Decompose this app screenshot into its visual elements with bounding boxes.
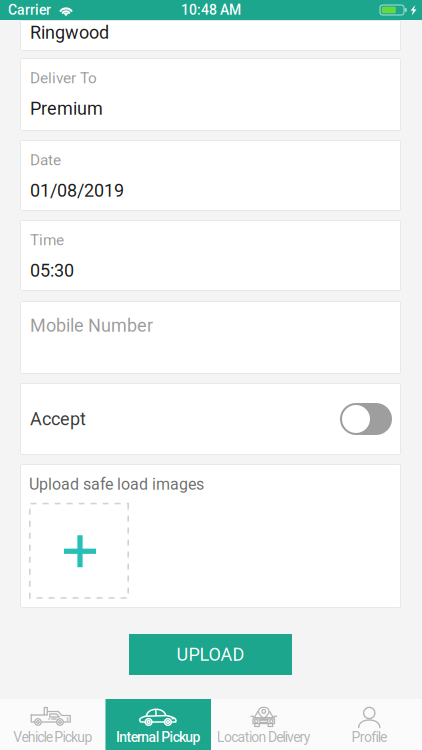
staticText: Mobile Number	[30, 315, 153, 336]
staticText: Location Delivery	[217, 729, 311, 745]
staticText: Vehicle Pickup	[13, 729, 92, 745]
staticText: Premium	[30, 98, 103, 119]
staticText: Date	[30, 151, 61, 169]
button[interactable]: Location Delivery	[211, 699, 316, 750]
button[interactable]: Profile	[316, 699, 422, 750]
staticText: Accept	[30, 408, 86, 430]
staticText: UPLOAD	[176, 644, 244, 665]
staticText: Ringwood	[30, 22, 109, 43]
staticText: 01/08/2019	[30, 180, 124, 201]
staticText: 10:48 AM	[181, 2, 241, 18]
button[interactable]: UPLOAD	[129, 634, 292, 675]
staticText: Time	[30, 231, 64, 249]
button[interactable]: Accept	[340, 403, 392, 435]
staticText: Profile	[351, 729, 387, 745]
staticText: 05:30	[30, 260, 74, 281]
button[interactable]: Internal Pickup	[105, 699, 211, 750]
staticText: Deliver To	[30, 69, 97, 87]
button[interactable]: Vehicle Pickup	[0, 699, 105, 750]
button[interactable]: Add photo	[29, 503, 129, 599]
staticText: Upload safe load images	[29, 475, 204, 494]
staticText: Internal Pickup	[116, 729, 200, 745]
staticText: Carrier	[8, 2, 51, 18]
